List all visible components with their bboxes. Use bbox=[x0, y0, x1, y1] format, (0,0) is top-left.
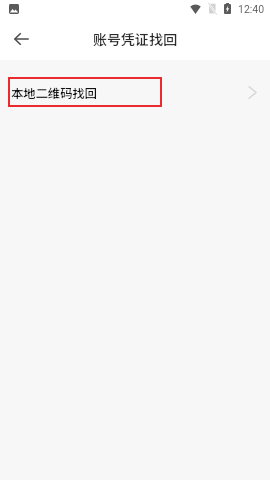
staticText: 本地二维码找回 bbox=[11, 84, 98, 102]
button[interactable]: 本地二维码找回 bbox=[0, 61, 270, 123]
button[interactable]: Back bbox=[0, 18, 42, 60]
staticText: 账号凭证找回 bbox=[93, 29, 177, 49]
staticText: 12:40 bbox=[238, 3, 265, 15]
